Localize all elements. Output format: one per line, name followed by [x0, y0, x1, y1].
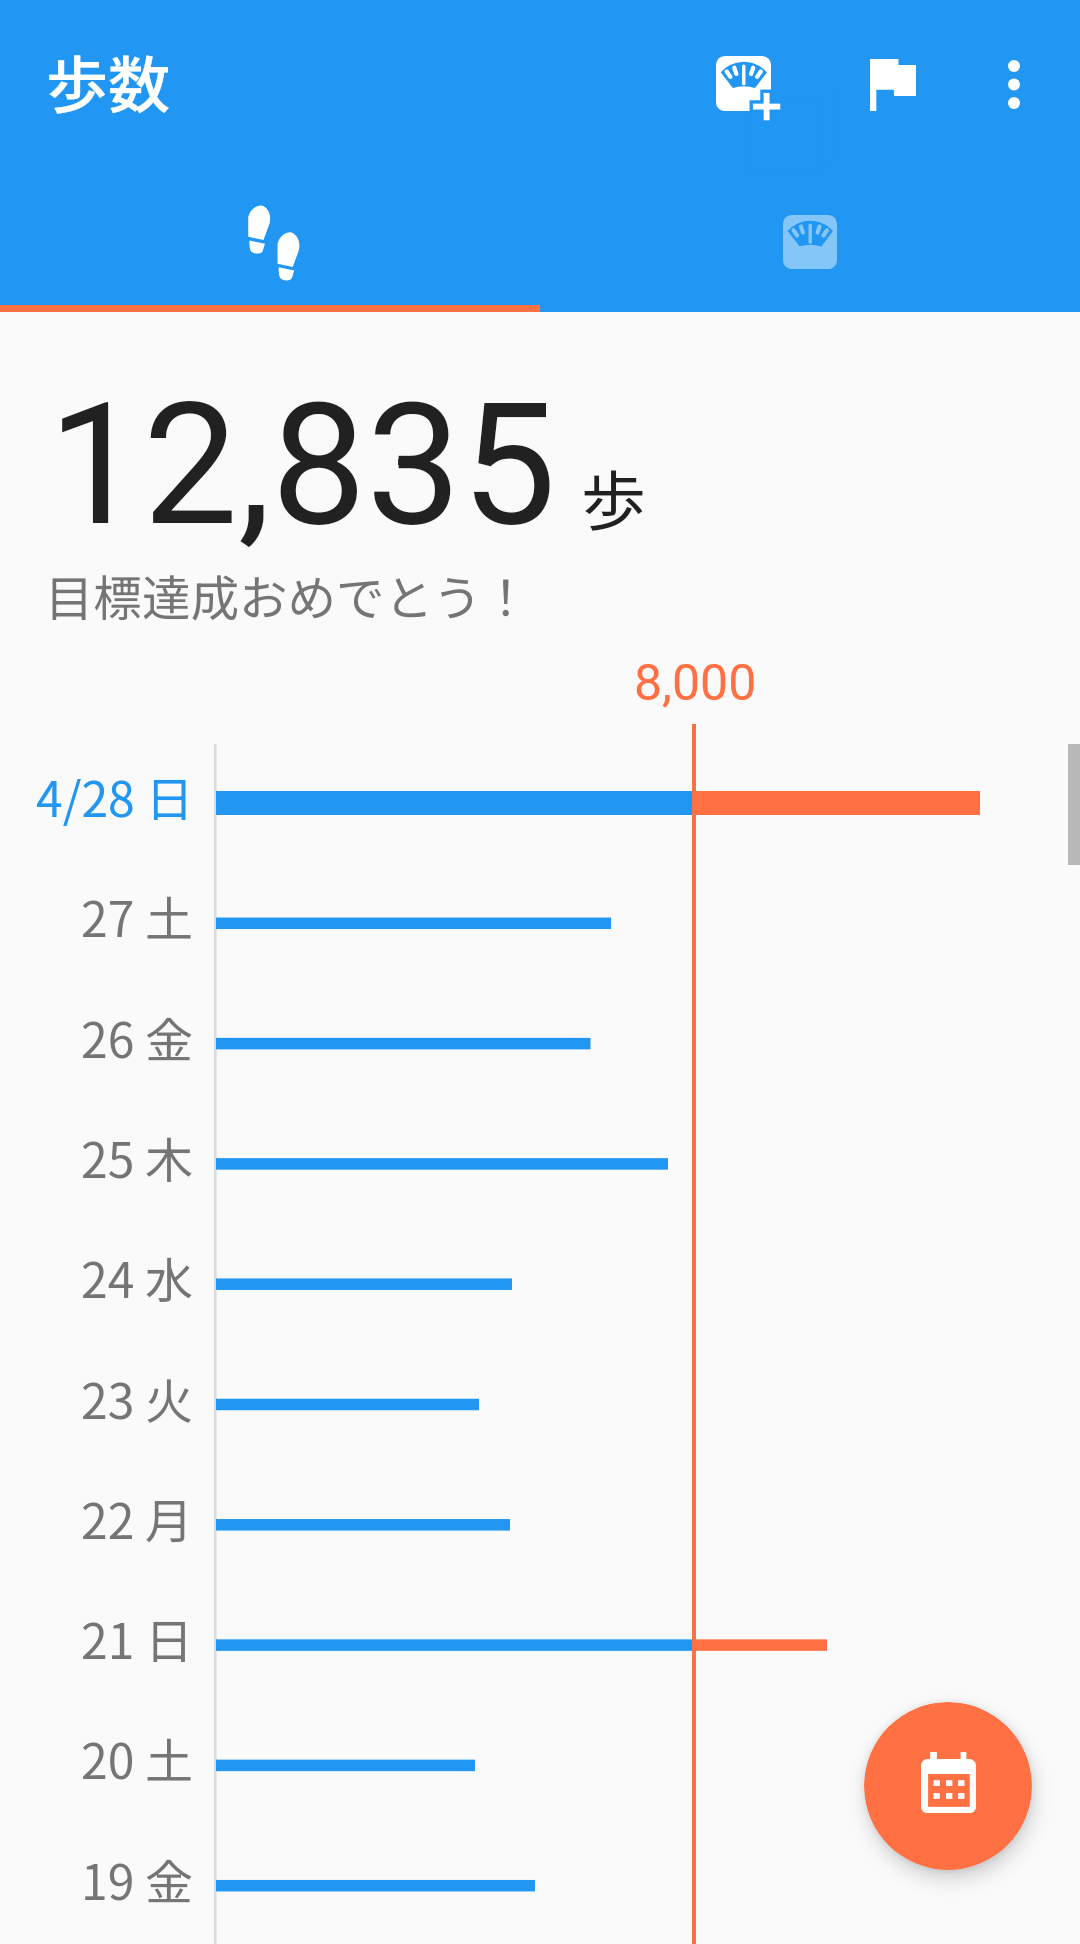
- staticText: 25 木: [81, 1122, 194, 1192]
- button[interactable]: Select date: [864, 1702, 1032, 1870]
- button[interactable]: Weight tab: [540, 152, 1080, 312]
- staticText: 8,000: [634, 654, 757, 713]
- staticText: 22 月: [81, 1483, 194, 1553]
- staticText: 歩数: [46, 36, 171, 126]
- staticText: 目標達成おめでとう！: [45, 560, 531, 630]
- button[interactable]: Goal: [836, 28, 948, 140]
- staticText: 24 水: [81, 1242, 194, 1312]
- staticText: 19 金: [81, 1844, 194, 1914]
- button[interactable]: More options: [958, 28, 1070, 140]
- staticText: 12,835: [48, 366, 557, 564]
- staticText: 23 火: [81, 1363, 194, 1433]
- staticText: 4/28 日: [36, 761, 194, 831]
- staticText: 26 金: [81, 1002, 194, 1072]
- staticText: 27 土: [81, 881, 194, 951]
- button[interactable]: Add weight: [696, 56, 808, 168]
- button[interactable]: Steps tab: [0, 152, 540, 312]
- staticText: 21 日: [81, 1603, 194, 1673]
- staticText: 歩: [581, 450, 647, 544]
- staticText: 20 土: [81, 1723, 194, 1793]
